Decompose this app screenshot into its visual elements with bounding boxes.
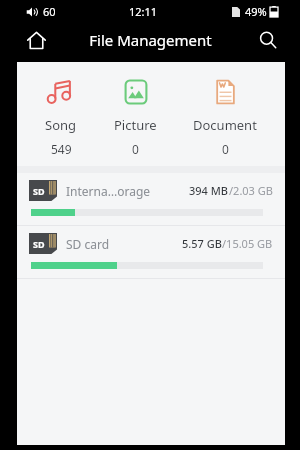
staticText: SD <box>33 238 45 250</box>
staticText: 549 <box>51 141 72 157</box>
staticText: Interna…orage <box>66 183 151 199</box>
staticText: SD card <box>66 236 110 252</box>
staticText: 5.57 GB <box>182 236 222 251</box>
staticText: /15.05 GB <box>222 236 273 251</box>
staticText: Picture <box>114 116 157 134</box>
staticText: 60 <box>43 4 56 19</box>
button[interactable]: Home <box>21 25 51 55</box>
button[interactable]: Document <box>185 75 265 159</box>
staticText: 0 <box>132 141 139 157</box>
button[interactable]: Song <box>37 75 85 159</box>
button[interactable]: SD <box>17 226 285 278</box>
button[interactable]: SD <box>17 173 285 225</box>
staticText: Song <box>45 116 77 134</box>
button[interactable]: Picture <box>106 75 165 159</box>
staticText: 0 <box>222 141 229 157</box>
staticText: File Management <box>89 30 212 50</box>
staticText: Document <box>193 116 257 134</box>
staticText: 394 MB <box>189 183 229 198</box>
staticText: 49% <box>245 4 267 19</box>
staticText: SD <box>33 185 45 197</box>
staticText: /2.03 GB <box>229 183 273 198</box>
button[interactable]: Search <box>253 25 283 55</box>
staticText: 12:11 <box>129 4 158 19</box>
